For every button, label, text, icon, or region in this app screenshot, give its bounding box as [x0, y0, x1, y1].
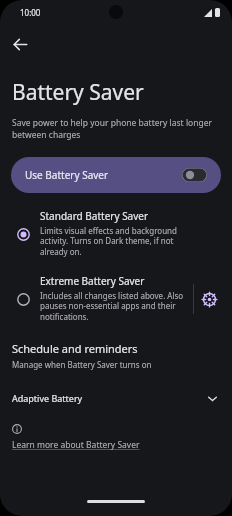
- staticText: Includes all changes listed above. Also …: [40, 290, 187, 323]
- button[interactable]: Schedule and reminders: [0, 339, 232, 374]
- staticText: Learn more about Battery Saver: [12, 439, 140, 451]
- button[interactable]: Extreme Battery Saver: [0, 270, 232, 327]
- staticText: Save power to help your phone battery la…: [12, 117, 216, 141]
- button[interactable]: Use Battery Saver: [11, 157, 221, 193]
- staticText: Use Battery Saver: [25, 168, 109, 182]
- button[interactable]: Adaptive Battery: [0, 386, 232, 410]
- staticText: Schedule and reminders: [12, 341, 138, 356]
- button[interactable]: Extreme Battery Saver settings: [194, 284, 224, 314]
- staticText: 10:00: [20, 7, 41, 18]
- staticText: Limits visual effects and background act…: [40, 225, 187, 258]
- button[interactable]: Learn more about Battery Saver: [12, 439, 140, 451]
- staticText: Adaptive Battery: [12, 392, 83, 404]
- staticText: Manage when Battery Saver turns on: [12, 359, 152, 370]
- staticText: Battery Saver: [12, 78, 144, 107]
- staticText: Extreme Battery Saver: [40, 274, 145, 288]
- staticText: Standard Battery Saver: [40, 209, 149, 223]
- button[interactable]: Back: [0, 24, 40, 64]
- button[interactable]: Standard Battery Saver: [0, 205, 232, 262]
